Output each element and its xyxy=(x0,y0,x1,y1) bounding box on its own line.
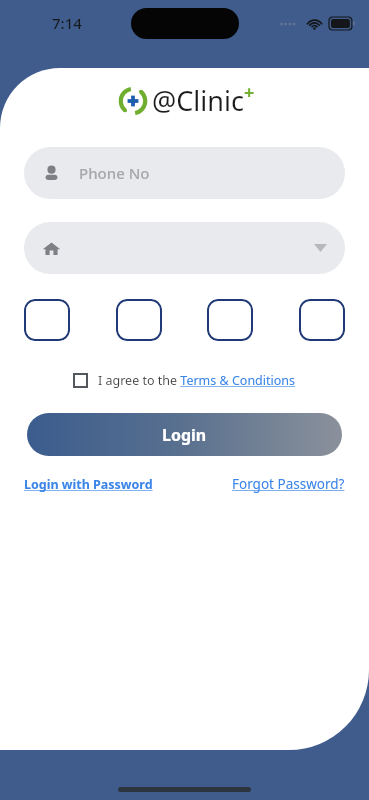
staticText: Login xyxy=(162,424,207,446)
button[interactable]: OTP digit xyxy=(24,299,70,341)
staticText: + xyxy=(244,80,255,105)
staticText: @Clinic xyxy=(152,82,244,119)
staticText: 7:14 xyxy=(52,13,82,33)
button[interactable]: OTP digit xyxy=(116,299,162,341)
staticText: Forgot Password? xyxy=(232,475,345,493)
staticText: Login with Password xyxy=(24,476,153,493)
staticText: Phone No xyxy=(79,163,150,183)
button[interactable]: OTP digit xyxy=(207,299,253,341)
button[interactable]: Login with Password xyxy=(22,474,155,495)
button[interactable]: OTP digit xyxy=(299,299,345,341)
button[interactable]: I agree to the Terms & Conditions xyxy=(0,370,369,391)
staticText: I agree to the Terms & Conditions xyxy=(98,372,296,389)
button[interactable]: Forgot Password? xyxy=(230,473,347,495)
button[interactable]: Login xyxy=(27,413,342,456)
button[interactable]: Select clinic xyxy=(24,222,345,274)
button[interactable]: Phone No xyxy=(24,147,345,199)
